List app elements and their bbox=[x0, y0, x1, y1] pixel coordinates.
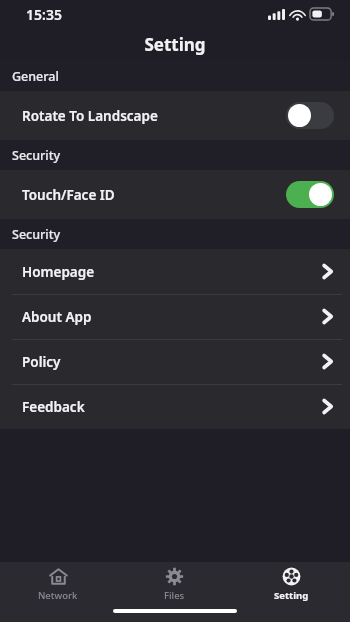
staticText: Network bbox=[38, 589, 78, 602]
button[interactable]: Network bbox=[0, 562, 116, 607]
button[interactable]: About App bbox=[0, 294, 350, 339]
staticText: Rotate To Landscape bbox=[22, 107, 158, 125]
staticText: General bbox=[12, 68, 59, 85]
button[interactable]: Touch/Face ID bbox=[0, 170, 350, 219]
button[interactable]: Toggle on bbox=[286, 181, 334, 208]
staticText: Touch/Face ID bbox=[22, 186, 115, 204]
staticText: About App bbox=[22, 308, 92, 326]
staticText: 15:35 bbox=[26, 5, 62, 24]
button[interactable]: Homepage bbox=[0, 249, 350, 294]
staticText: Files bbox=[164, 589, 185, 602]
button[interactable]: Feedback bbox=[0, 384, 350, 429]
staticText: Setting bbox=[144, 33, 206, 56]
staticText: Homepage bbox=[22, 263, 95, 281]
button[interactable]: Toggle off bbox=[286, 102, 334, 129]
staticText: Feedback bbox=[22, 398, 85, 416]
staticText: Security bbox=[12, 147, 61, 164]
button[interactable]: Files bbox=[116, 562, 233, 607]
staticText: Policy bbox=[22, 353, 61, 371]
button[interactable]: Setting bbox=[233, 562, 350, 607]
button[interactable]: Rotate To Landscape bbox=[0, 91, 350, 140]
button[interactable]: Policy bbox=[0, 339, 350, 384]
staticText: Security bbox=[12, 226, 61, 243]
staticText: Setting bbox=[274, 589, 309, 602]
